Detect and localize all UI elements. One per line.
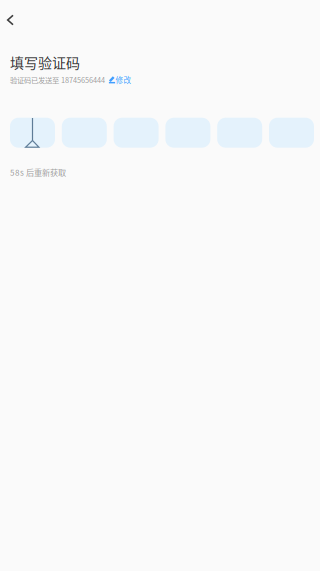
button[interactable]: 修改 [108, 74, 131, 85]
staticText: 修改 [115, 74, 131, 85]
button[interactable]: Back [0, 0, 36, 40]
button[interactable]: Verification code digit 5 [217, 118, 262, 148]
button[interactable]: Verification code digit 6 [269, 118, 314, 148]
button[interactable]: Verification code digit 2 [62, 118, 107, 148]
button[interactable]: Verification code digit 3 [114, 118, 159, 148]
staticText: 填写验证码 [10, 52, 80, 72]
button[interactable]: 58s 后重新获取 [10, 166, 66, 178]
staticText: 58s 后重新获取 [10, 166, 66, 178]
button[interactable]: Verification code digit 1 [10, 118, 55, 148]
staticText: 验证码已发送至 18745656444 [10, 74, 105, 85]
button[interactable]: Verification code digit 4 [165, 118, 210, 148]
